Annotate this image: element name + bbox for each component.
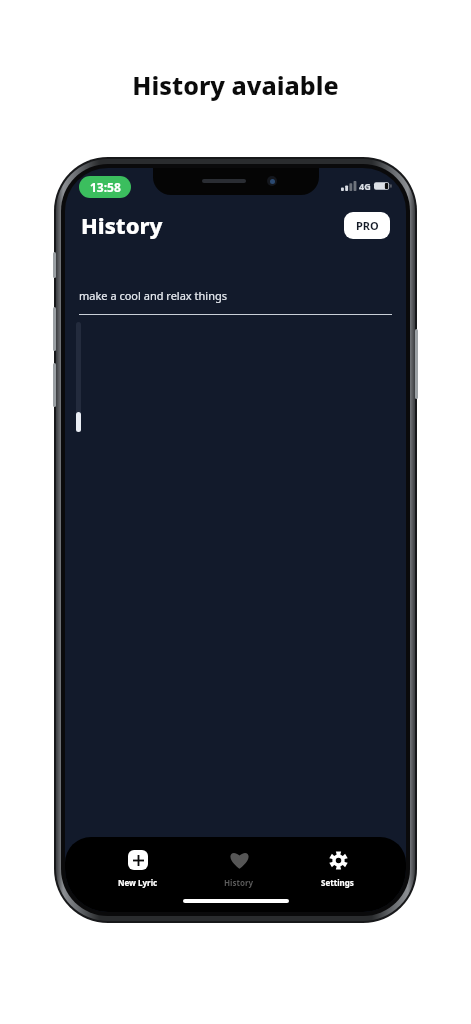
staticText: Settings <box>321 877 354 888</box>
staticText: History <box>81 210 163 240</box>
button[interactable]: New Lyric <box>104 846 172 891</box>
button[interactable]: make a cool and relax things <box>79 288 392 315</box>
staticText: 4G <box>359 180 371 192</box>
staticText: History <box>224 877 254 888</box>
button[interactable]: Settings <box>307 846 368 891</box>
staticText: History avaiable <box>132 68 339 102</box>
staticText: 13:58 <box>90 179 121 195</box>
staticText: PRO <box>356 218 379 233</box>
staticText: New Lyric <box>118 877 158 888</box>
button[interactable]: History <box>210 846 268 891</box>
staticText: make a cool and relax things <box>79 288 227 303</box>
button[interactable]: PRO <box>344 212 390 239</box>
